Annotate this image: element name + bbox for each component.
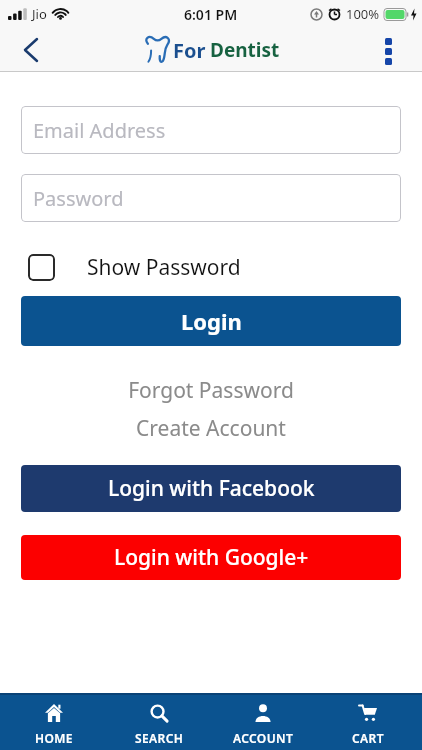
- button[interactable]: Create Account: [0, 414, 422, 443]
- button[interactable]: Login: [21, 296, 401, 346]
- button[interactable]: HOME: [4, 693, 104, 750]
- staticText: Jio: [32, 5, 47, 23]
- staticText: Dentist: [210, 37, 280, 63]
- button[interactable]: Login with Google+: [21, 535, 401, 580]
- staticText: Password: [33, 185, 124, 212]
- button[interactable]: CART: [318, 693, 418, 750]
- staticText: CART: [352, 730, 384, 746]
- button[interactable]: ACCOUNT: [213, 693, 313, 750]
- button[interactable]: Password: [21, 174, 401, 222]
- staticText: 6:01 PM: [184, 5, 238, 24]
- staticText: Login with Google+: [114, 543, 309, 572]
- button[interactable]: Login with Facebook: [21, 465, 401, 512]
- staticText: Login with Facebook: [108, 474, 315, 503]
- staticText: SEARCH: [135, 730, 184, 746]
- button[interactable]: Forgot Password: [0, 376, 422, 405]
- staticText: For: [173, 37, 206, 64]
- staticText: 100%: [346, 5, 380, 23]
- staticText: ACCOUNT: [233, 730, 294, 746]
- button[interactable]: SEARCH: [109, 693, 209, 750]
- staticText: Login: [181, 306, 242, 336]
- button[interactable]: Show Password: [28, 253, 241, 282]
- staticText: HOME: [35, 730, 73, 746]
- button[interactable]: [376, 38, 400, 62]
- button[interactable]: Email Address: [21, 106, 401, 154]
- button[interactable]: [16, 35, 46, 65]
- staticText: Email Address: [33, 117, 166, 144]
- staticText: Show Password: [87, 253, 241, 282]
